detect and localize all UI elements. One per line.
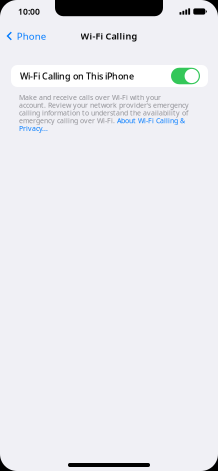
staticText: 10:00: [18, 6, 40, 17]
button[interactable]: Wi-Fi Calling on This iPhone: [11, 65, 208, 87]
staticText: Phone: [17, 29, 46, 43]
staticText: Make and receive calls over Wi-Fi with y…: [19, 93, 189, 133]
staticText: Wi-Fi Calling: [80, 30, 137, 42]
button[interactable]: Make and receive calls over Wi-Fi with y…: [19, 93, 199, 133]
button[interactable]: Phone: [0, 26, 52, 46]
staticText: Wi-Fi Calling on This iPhone: [20, 70, 134, 82]
